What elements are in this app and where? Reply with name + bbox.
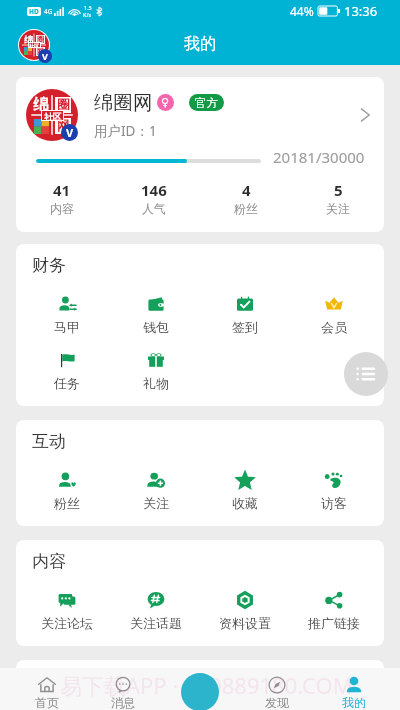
button[interactable]: 发现 bbox=[241, 668, 313, 710]
button[interactable]: 绵 bbox=[16, 77, 384, 147]
button[interactable]: 我的 bbox=[318, 668, 390, 710]
staticText: 消息 bbox=[111, 695, 135, 710]
staticText: 钱包 bbox=[143, 319, 169, 335]
staticText: 我的 bbox=[342, 695, 366, 710]
button[interactable]: 41 bbox=[16, 180, 108, 216]
staticText: 1.5 bbox=[84, 4, 92, 11]
staticText: 发现 bbox=[265, 695, 289, 710]
staticText: 社区 bbox=[29, 43, 40, 47]
staticText: 粉丝 bbox=[234, 201, 258, 216]
staticText: 易下载APP · 400889180.COM bbox=[60, 670, 353, 700]
button[interactable]: 列表 bbox=[344, 352, 388, 396]
staticText: ♀ bbox=[161, 96, 170, 109]
button[interactable]: 马甲 bbox=[22, 294, 111, 335]
button[interactable]: 收藏 bbox=[200, 470, 289, 511]
staticText: 会员 bbox=[321, 319, 347, 335]
button[interactable]: 4 bbox=[200, 180, 292, 216]
staticText: 互动 bbox=[32, 431, 66, 452]
button[interactable]: 推广链接 bbox=[289, 590, 378, 631]
staticText: 用户ID：1 bbox=[94, 122, 157, 140]
staticText: 官方 bbox=[195, 96, 218, 110]
button[interactable]: 关注论坛 bbox=[22, 590, 111, 631]
staticText: 13:36 bbox=[344, 2, 378, 20]
staticText: 内容 bbox=[50, 201, 74, 216]
staticText: 访客 bbox=[321, 495, 347, 511]
staticText: 人气 bbox=[142, 201, 166, 216]
staticText: 20181/30000 bbox=[273, 147, 365, 167]
staticText: 4 bbox=[242, 180, 251, 200]
button[interactable]: 146 bbox=[108, 180, 200, 216]
staticText: 关注论坛 bbox=[41, 615, 93, 631]
button[interactable]: 粉丝 bbox=[22, 470, 111, 511]
staticText: 绵 bbox=[33, 95, 49, 115]
staticText: HD bbox=[29, 7, 39, 16]
staticText: 粉丝 bbox=[54, 495, 80, 511]
button[interactable]: 关注 bbox=[111, 470, 200, 511]
staticText: 绵圈网 bbox=[94, 90, 153, 115]
staticText: 任务 bbox=[54, 375, 80, 391]
button[interactable]: 资料设置 bbox=[200, 590, 289, 631]
staticText: 资料设置 bbox=[219, 615, 271, 631]
button[interactable]: 钱包 bbox=[111, 294, 200, 335]
button[interactable]: 任务 bbox=[22, 350, 111, 391]
staticText: 社区 bbox=[44, 111, 62, 120]
button[interactable]: 头像 bbox=[18, 29, 52, 63]
button[interactable]: 访客 bbox=[289, 470, 378, 511]
staticText: 关注 bbox=[143, 495, 169, 511]
button[interactable]: 消息 bbox=[87, 668, 159, 710]
staticText: 5 bbox=[334, 180, 343, 200]
staticText: 推广链接 bbox=[308, 615, 360, 631]
staticText: 圈 bbox=[37, 35, 45, 44]
button[interactable]: 5 bbox=[292, 180, 384, 216]
staticText: 关注 bbox=[326, 201, 350, 216]
staticText: 网 bbox=[57, 118, 70, 134]
staticText: 44% bbox=[290, 3, 314, 19]
staticText: 马甲 bbox=[54, 319, 80, 335]
button[interactable]: 关注话题 bbox=[111, 590, 200, 631]
button[interactable]: 礼物 bbox=[111, 350, 200, 391]
staticText: 内容 bbox=[32, 551, 66, 572]
staticText: 146 bbox=[141, 180, 167, 200]
staticText: V bbox=[66, 125, 74, 140]
staticText: 我的 bbox=[184, 34, 216, 54]
staticText: K/s bbox=[83, 11, 92, 18]
staticText: 礼物 bbox=[143, 375, 169, 391]
staticText: 签到 bbox=[232, 319, 258, 335]
staticText: 收藏 bbox=[232, 495, 258, 511]
staticText: 圈 bbox=[57, 97, 70, 113]
staticText: 4G bbox=[44, 7, 53, 16]
staticText: 财务 bbox=[32, 255, 66, 276]
button[interactable]: 签到 bbox=[200, 294, 289, 335]
staticText: 首页 bbox=[35, 695, 59, 710]
staticText: 关注话题 bbox=[130, 615, 182, 631]
staticText: 绵 bbox=[24, 34, 33, 45]
staticText: 41 bbox=[53, 180, 71, 200]
button[interactable]: 会员 bbox=[289, 294, 378, 335]
button[interactable]: 首页 bbox=[11, 668, 83, 710]
staticText: V bbox=[42, 50, 48, 62]
staticText: 网 bbox=[37, 47, 45, 56]
